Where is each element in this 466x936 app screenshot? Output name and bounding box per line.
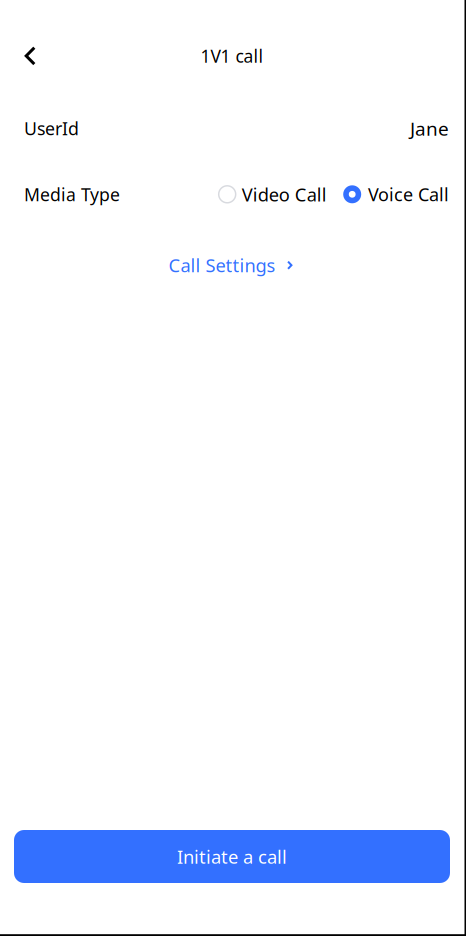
staticText: Media Type: [24, 182, 120, 206]
staticText: Call Settings: [168, 253, 275, 278]
staticText: Initiate a call: [177, 844, 287, 869]
staticText: 1V1 call: [200, 44, 263, 68]
staticText: UserId: [24, 116, 79, 140]
staticText: Jane: [410, 115, 449, 141]
button[interactable]: Call Settings: [168, 243, 292, 287]
staticText: Voice Call: [368, 182, 449, 206]
button[interactable]: Video Call: [219, 182, 327, 207]
button[interactable]: Back: [0, 34, 60, 78]
button[interactable]: Initiate a call: [14, 830, 450, 883]
staticText: Video Call: [242, 182, 327, 207]
button[interactable]: Voice Call: [343, 182, 449, 206]
